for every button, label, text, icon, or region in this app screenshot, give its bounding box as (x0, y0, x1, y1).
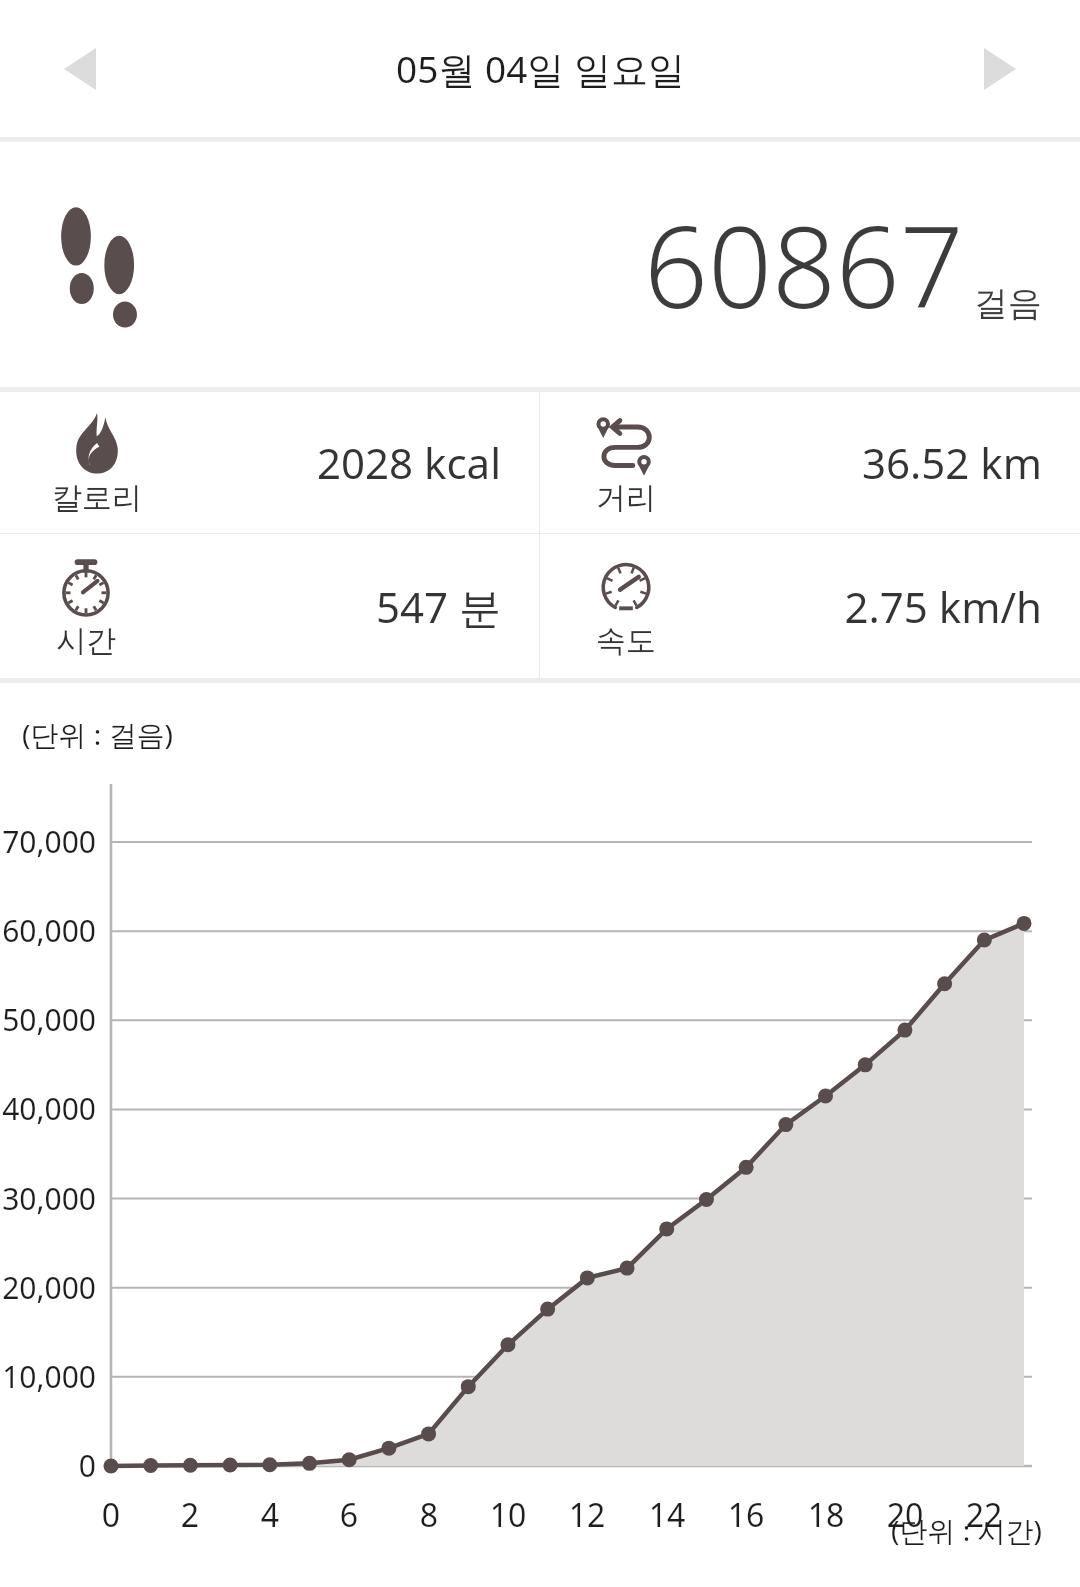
staticText: 20 (875, 1493, 935, 1537)
staticText: (단위 : 걸음) (22, 715, 173, 753)
staticText: 70,000 (0, 821, 96, 862)
staticText: 0 (81, 1493, 141, 1537)
staticText: 30,000 (0, 1178, 96, 1219)
button[interactable]: Previous day (40, 29, 120, 109)
staticText: 22 (954, 1493, 1014, 1537)
staticText: 10 (478, 1493, 538, 1537)
staticText: 속도 (596, 622, 656, 660)
staticText: 2028 kcal (160, 434, 501, 491)
staticText: 2.75 km/h (700, 578, 1042, 635)
button[interactable]: Calories (0, 392, 539, 533)
button[interactable]: Distance (540, 392, 1080, 533)
button[interactable]: Next day (960, 29, 1040, 109)
staticText: 12 (557, 1493, 617, 1537)
staticText: 50,000 (0, 999, 96, 1040)
staticText: 60,000 (0, 910, 96, 951)
staticText: 10,000 (0, 1356, 96, 1397)
other: Steps (52, 203, 148, 327)
staticText: 36.52 km (700, 434, 1042, 491)
staticText: 05월 04일 일요일 (396, 43, 685, 94)
staticText: 8 (399, 1493, 459, 1537)
staticText: 4 (240, 1493, 300, 1537)
staticText: 시간 (56, 622, 116, 660)
staticText: 칼로리 (52, 479, 142, 517)
staticText: 14 (637, 1493, 697, 1537)
other: Speed (592, 552, 660, 620)
other: Time (52, 552, 120, 620)
staticText: 16 (716, 1493, 776, 1537)
other: Distance (592, 409, 660, 477)
button[interactable]: Time (0, 534, 539, 678)
staticText: 40,000 (0, 1088, 96, 1129)
staticText: 0 (0, 1445, 96, 1486)
other: Calories (63, 409, 131, 477)
staticText: (단위 : 시간) (891, 1511, 1042, 1549)
staticText: 20,000 (0, 1267, 96, 1308)
staticText: 거리 (596, 479, 656, 517)
staticText: 6 (319, 1493, 379, 1537)
staticText: 걸음 (974, 282, 1042, 325)
staticText: 547 분 (160, 578, 501, 635)
staticText: 18 (796, 1493, 856, 1537)
staticText: 2 (160, 1493, 220, 1537)
staticText: 60867 (644, 188, 964, 341)
button[interactable]: Steps (0, 142, 1080, 387)
button[interactable]: Speed (540, 534, 1080, 678)
